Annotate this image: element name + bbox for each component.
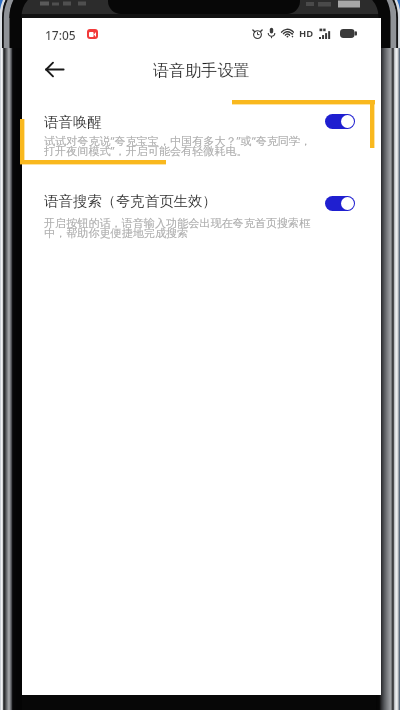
staticText: 打开夜间模式”，开启可能会有轻微耗电。 (44, 143, 248, 158)
staticText: HD (299, 27, 314, 40)
button[interactable]: Back (34, 49, 74, 89)
staticText: 试试对夸克说“夸克宝宝，中国有多大？”或“夸克同学， (44, 133, 312, 148)
staticText: 开启按钮的话，语音输入功能会出现在夸克首页搜索框 (44, 216, 311, 230)
button[interactable]: Toggle (325, 114, 355, 129)
button[interactable]: 语音唤醒 (22, 100, 381, 162)
button[interactable]: Toggle (325, 196, 355, 211)
staticText: 语音搜索（夸克首页生效） (44, 192, 217, 210)
staticText: 语音助手设置 (153, 60, 250, 80)
staticText: 17:05 (45, 27, 76, 43)
staticText: 语音唤醒 (44, 113, 102, 131)
button[interactable]: 语音搜索（夸克首页生效） (22, 180, 381, 242)
staticText: 中，帮助你更便捷地完成搜索 (44, 226, 189, 240)
